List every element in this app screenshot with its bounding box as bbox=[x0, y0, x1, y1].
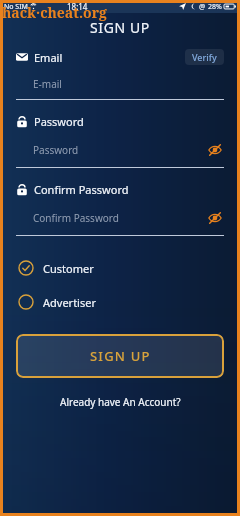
button[interactable]: Verify bbox=[185, 49, 224, 65]
button[interactable]: Already have An Account? bbox=[0, 395, 240, 409]
staticText: 28% bbox=[208, 2, 222, 12]
staticText: Email bbox=[34, 50, 63, 65]
button[interactable]: Toggle password visibility bbox=[206, 209, 224, 227]
staticText: No SIM bbox=[4, 2, 28, 12]
staticText: E-mail bbox=[33, 77, 62, 91]
button[interactable]: Advertiser bbox=[0, 292, 240, 312]
staticText: SIGN UP bbox=[90, 347, 151, 365]
button[interactable]: SIGN UP bbox=[16, 334, 224, 378]
staticText: SIGN UP bbox=[90, 18, 150, 37]
staticText: Password bbox=[33, 143, 79, 157]
staticText: Password bbox=[34, 114, 84, 129]
staticText: Verify bbox=[192, 51, 217, 63]
staticText: Customer bbox=[43, 261, 94, 276]
staticText: Advertiser bbox=[43, 295, 96, 310]
button[interactable]: Toggle password visibility bbox=[206, 141, 224, 159]
button[interactable]: Customer bbox=[0, 258, 240, 278]
staticText: Already have An Account? bbox=[60, 395, 181, 409]
staticText: hack·cheat.org bbox=[2, 3, 107, 22]
staticText: @ bbox=[199, 2, 206, 12]
staticText: 18:14 bbox=[67, 1, 88, 12]
staticText: Confirm Password bbox=[33, 211, 119, 225]
staticText: Confirm Password bbox=[34, 182, 129, 197]
